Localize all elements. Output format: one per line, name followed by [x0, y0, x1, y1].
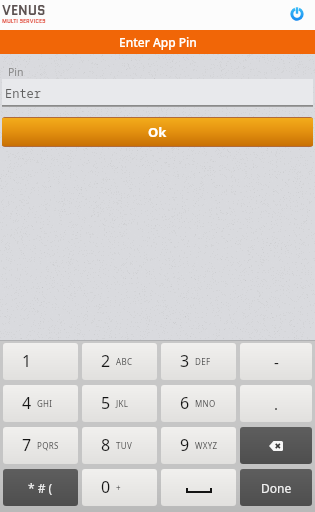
staticText: +: [116, 482, 121, 493]
button[interactable]: 1: [3, 343, 78, 380]
button[interactable]: Enter: [2, 79, 313, 105]
staticText: 0: [101, 476, 111, 498]
button[interactable]: 8: [82, 427, 157, 464]
button[interactable]: 0: [82, 469, 157, 506]
button[interactable]: -: [240, 343, 312, 380]
staticText: PQRS: [37, 440, 59, 451]
button[interactable]: 4: [3, 385, 78, 422]
button[interactable]: 6: [161, 385, 236, 422]
staticText: 6: [180, 392, 190, 414]
staticText: MNO: [195, 398, 216, 409]
button[interactable]: .: [240, 385, 312, 422]
staticText: MULTI SERVICES: [2, 17, 46, 25]
staticText: Enter App Pin: [119, 34, 197, 50]
button[interactable]: Done: [240, 469, 312, 506]
staticText: 5: [101, 392, 111, 414]
staticText: Done: [261, 480, 292, 496]
staticText: 1: [22, 350, 32, 372]
button[interactable]: Ok: [2, 118, 313, 146]
staticText: .: [274, 394, 279, 414]
staticText: Pin: [8, 65, 24, 79]
staticText: DEF: [195, 356, 211, 367]
staticText: 8: [101, 434, 111, 456]
staticText: 4: [22, 392, 32, 414]
staticText: Ok: [148, 123, 167, 141]
staticText: * # (: [28, 480, 53, 496]
staticText: JKL: [116, 398, 129, 409]
staticText: -: [274, 352, 279, 372]
button[interactable]: Power: [290, 7, 304, 21]
button[interactable]: 7: [3, 427, 78, 464]
staticText: Enter: [5, 85, 42, 101]
staticText: ABC: [116, 356, 133, 367]
button[interactable]: Backspace: [240, 427, 312, 464]
staticText: 2: [101, 350, 111, 372]
button[interactable]: 5: [82, 385, 157, 422]
staticText: TUV: [116, 440, 132, 451]
button[interactable]: 9: [161, 427, 236, 464]
staticText: VENUS: [2, 1, 46, 20]
button[interactable]: 2: [82, 343, 157, 380]
button[interactable]: * # (: [3, 469, 78, 506]
button[interactable]: 3: [161, 343, 236, 380]
staticText: 3: [180, 350, 190, 372]
staticText: WXYZ: [195, 440, 218, 451]
staticText: GHI: [37, 398, 53, 409]
staticText: 9: [180, 434, 190, 456]
staticText: 7: [22, 434, 32, 456]
button[interactable]: Space: [161, 469, 236, 506]
